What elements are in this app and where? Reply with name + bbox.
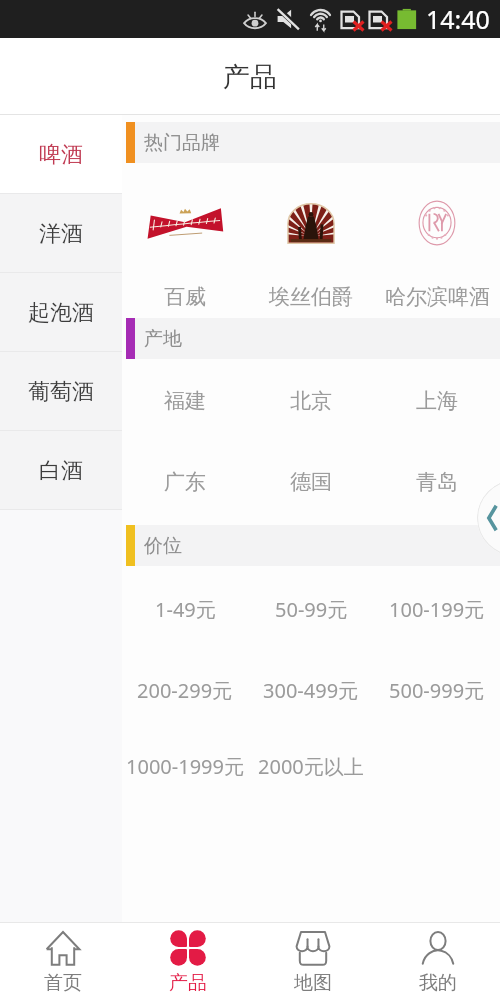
staticText: 我的 [419, 971, 457, 995]
button[interactable]: Previous [477, 480, 500, 556]
staticText: 2000元以上 [258, 753, 364, 780]
button[interactable]: 我的 [375, 923, 500, 1000]
staticText: 福建 [164, 388, 206, 414]
button[interactable]: 2000元以上 [248, 728, 374, 805]
staticText: 产品 [223, 60, 277, 94]
staticText: 200-299元 [137, 677, 233, 704]
staticText: 德国 [290, 469, 332, 495]
staticText: 1000-1999元 [126, 753, 244, 780]
button[interactable]: 白酒 [0, 431, 122, 510]
staticText: 白酒 [39, 457, 83, 485]
button[interactable]: 1-49元 [122, 566, 248, 652]
staticText: 哈尔滨啤酒 [385, 284, 490, 310]
staticText: 100-199元 [389, 596, 485, 623]
staticText: 首页 [44, 971, 82, 995]
staticText: 青岛 [416, 469, 458, 495]
button[interactable]: 起泡酒 [0, 273, 122, 352]
staticText: 起泡酒 [28, 299, 94, 327]
button[interactable]: 1000-1999元 [122, 728, 248, 805]
button[interactable]: 北京 [248, 359, 374, 443]
staticText: 1-49元 [155, 596, 216, 623]
button[interactable]: 50-99元 [248, 566, 374, 652]
button[interactable]: 500-999元 [374, 652, 500, 728]
staticText: 啤酒 [39, 141, 83, 169]
button[interactable] [122, 167, 248, 279]
button[interactable]: 200-299元 [122, 652, 248, 728]
staticText: 百威 [164, 284, 206, 310]
staticText: 埃丝伯爵 [269, 284, 353, 310]
staticText: 产品 [169, 971, 207, 995]
button[interactable]: 啤酒 [0, 115, 122, 194]
staticText: 上海 [416, 388, 458, 414]
button[interactable]: 上海 [374, 359, 500, 443]
staticText: 50-99元 [275, 596, 348, 623]
staticText: 500-999元 [389, 677, 485, 704]
button[interactable]: 首页 [0, 923, 125, 1000]
button[interactable]: 埃丝伯爵 [248, 275, 374, 318]
button[interactable]: 300-499元 [248, 652, 374, 728]
button[interactable]: 福建 [122, 359, 248, 443]
staticText: 北京 [290, 388, 332, 414]
staticText: 价位 [144, 534, 182, 558]
staticText: 洋酒 [39, 220, 83, 248]
staticText: 葡萄酒 [28, 378, 94, 406]
staticText: 热门品牌 [144, 131, 220, 155]
button[interactable]: 德国 [248, 443, 374, 521]
button[interactable]: 青岛 [374, 443, 500, 521]
button[interactable] [248, 167, 374, 279]
button[interactable]: 葡萄酒 [0, 352, 122, 431]
button[interactable]: 洋酒 [0, 194, 122, 273]
button[interactable]: 哈尔滨啤酒 [374, 275, 500, 318]
button[interactable]: 广东 [122, 443, 248, 521]
staticText: 地图 [294, 971, 332, 995]
button[interactable]: 地图 [250, 923, 375, 1000]
staticText: 广东 [164, 469, 206, 495]
button[interactable]: 100-199元 [374, 566, 500, 652]
staticText: 300-499元 [263, 677, 359, 704]
button[interactable]: 百威 [122, 275, 248, 318]
staticText: 14:40 [426, 2, 490, 36]
button[interactable]: 产品 [125, 923, 250, 1000]
staticText: 产地 [144, 327, 182, 351]
button[interactable] [374, 167, 500, 279]
